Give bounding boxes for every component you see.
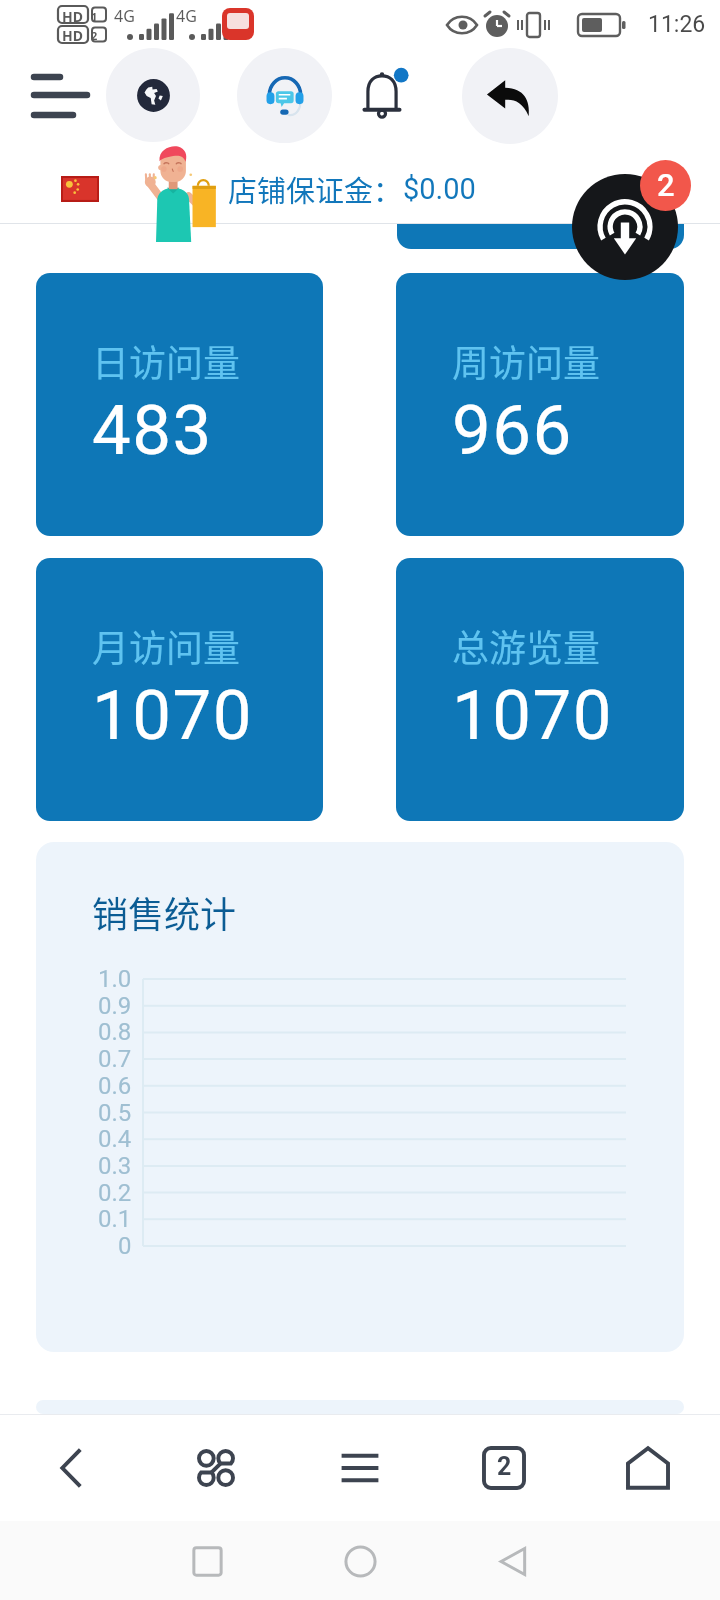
button[interactable]: Home xyxy=(576,1414,720,1521)
staticText: 0.5 xyxy=(98,1099,132,1127)
staticText: 1 xyxy=(91,9,98,24)
button[interactable]: Recent apps xyxy=(177,1531,237,1591)
button[interactable]: Language xyxy=(106,48,200,142)
button[interactable]: Multi window xyxy=(144,1414,288,1521)
staticText: 月访问量 xyxy=(92,619,240,673)
staticText: 966 xyxy=(452,390,573,471)
staticText: 4G xyxy=(114,5,135,27)
staticText: HD xyxy=(62,26,83,45)
staticText: 11:26 xyxy=(648,11,706,38)
button[interactable]: Back xyxy=(0,1414,144,1521)
button[interactable]: Menu xyxy=(288,1414,432,1521)
staticText: 0 xyxy=(118,1232,132,1260)
staticText: $0.00 xyxy=(403,172,476,206)
staticText: 0.1 xyxy=(98,1205,132,1233)
staticText: 0.8 xyxy=(98,1018,132,1046)
staticText: 4G xyxy=(176,5,197,27)
staticText: 0.4 xyxy=(98,1125,132,1153)
staticText: 1070 xyxy=(452,675,614,756)
button[interactable]: Home xyxy=(330,1531,390,1591)
staticText: 销售统计 xyxy=(92,886,237,938)
staticText: 483 xyxy=(92,390,213,471)
button[interactable]: 销售统计 xyxy=(36,842,684,1352)
staticText: 2 xyxy=(497,1452,512,1481)
button[interactable]: Menu xyxy=(18,52,90,124)
button[interactable]: 总游览量 xyxy=(396,558,684,821)
button[interactable]: 周访问量 xyxy=(396,273,684,536)
button[interactable]: Back xyxy=(462,48,558,144)
staticText: 0.9 xyxy=(98,992,132,1020)
staticText: 1070 xyxy=(92,675,254,756)
button[interactable]: 月访问量 xyxy=(36,558,323,821)
staticText: HD xyxy=(62,7,83,26)
staticText: 0.6 xyxy=(98,1072,132,1100)
staticText: 2 xyxy=(657,167,675,203)
staticText: 0.2 xyxy=(98,1179,132,1207)
staticText: 日访问量 xyxy=(92,334,240,388)
button[interactable]: Notifications xyxy=(350,64,414,128)
button[interactable]: Back xyxy=(483,1531,543,1591)
staticText: 0.3 xyxy=(98,1152,132,1180)
staticText: 2 xyxy=(91,28,98,43)
button[interactable]: 日访问量 xyxy=(36,273,323,536)
button[interactable]: Download xyxy=(572,174,678,280)
button[interactable]: Country xyxy=(61,176,99,202)
staticText: 店铺保证金： xyxy=(228,168,403,210)
staticText: 0.7 xyxy=(98,1045,132,1073)
staticText: 1.0 xyxy=(98,965,132,993)
staticText: 总游览量 xyxy=(452,619,600,673)
button[interactable]: Tabs xyxy=(432,1414,576,1521)
button[interactable]: Customer support xyxy=(237,48,332,143)
staticText: 周访问量 xyxy=(452,334,600,388)
